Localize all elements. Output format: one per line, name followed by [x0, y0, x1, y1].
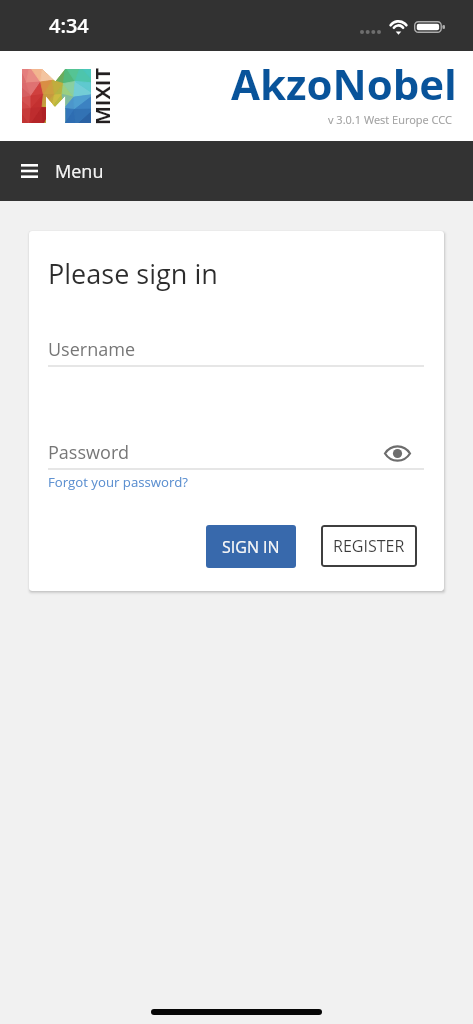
staticText: Menu — [55, 159, 104, 184]
button[interactable]: REGISTER — [321, 525, 417, 567]
staticText: SIGN IN — [222, 536, 280, 558]
staticText: REGISTER — [333, 535, 405, 557]
button[interactable]: Forgot your password? — [48, 473, 188, 491]
staticText: v 3.0.1 West Europe CCC — [328, 112, 453, 127]
staticText: 4:34 — [49, 12, 89, 39]
other: Open menu — [21, 164, 38, 178]
button[interactable]: Open menu — [0, 141, 473, 201]
staticText: Username — [48, 337, 136, 362]
button[interactable]: SIGN IN — [206, 525, 296, 568]
staticText: AkzoNobel — [231, 55, 457, 112]
button[interactable]: Show password — [384, 443, 410, 463]
staticText: Please sign in — [48, 255, 218, 292]
staticText: Password — [48, 440, 129, 465]
